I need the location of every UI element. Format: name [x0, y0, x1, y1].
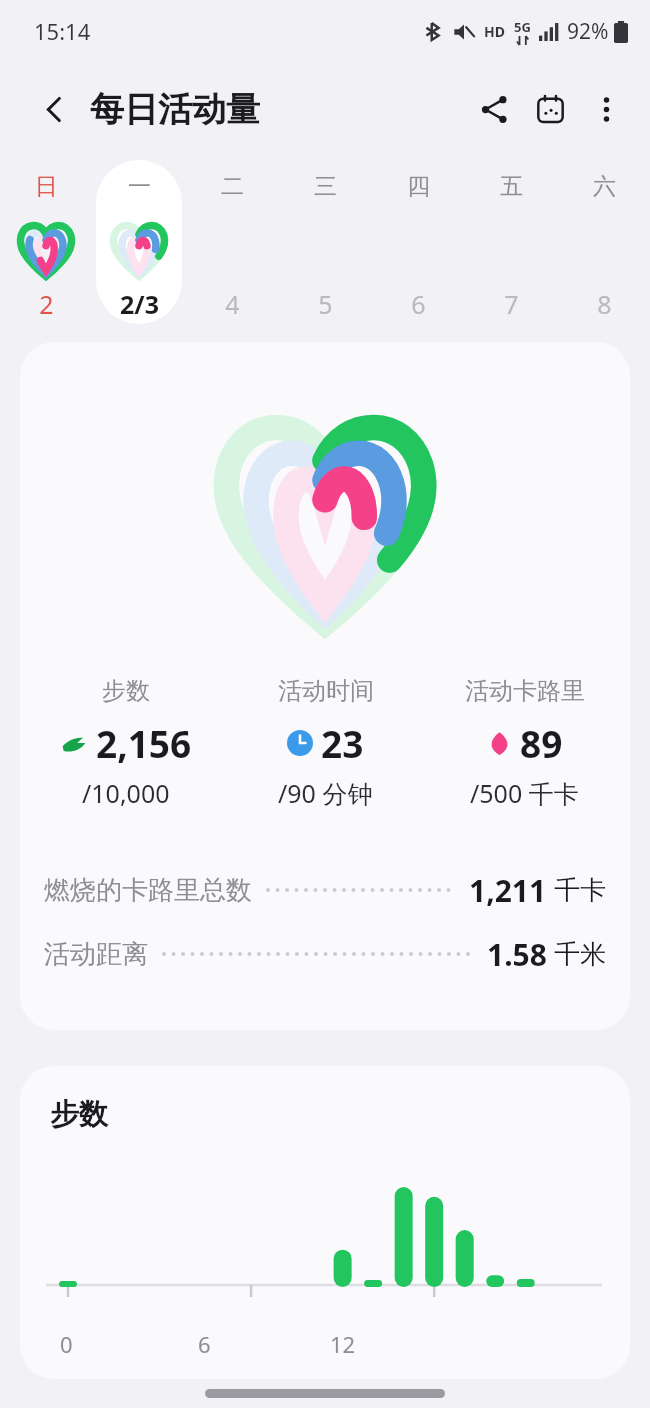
- staticText: 千米: [554, 938, 606, 971]
- staticText: 步数: [102, 676, 150, 706]
- button[interactable]: 三: [282, 160, 368, 324]
- button[interactable]: 一: [96, 160, 182, 324]
- staticText: 5G: [514, 18, 531, 36]
- staticText: 五: [500, 172, 523, 201]
- staticText: 6: [198, 1329, 211, 1359]
- staticText: /10,000: [82, 776, 170, 810]
- staticText: 活动时间: [278, 676, 374, 706]
- staticText: 活动距离: [44, 938, 148, 971]
- staticText: 千卡: [554, 874, 606, 907]
- button[interactable]: 步数: [26, 676, 226, 810]
- button[interactable]: Share: [466, 81, 522, 137]
- button[interactable]: 活动时间: [226, 676, 425, 810]
- staticText: 三: [314, 172, 337, 201]
- button[interactable]: 四: [375, 160, 461, 324]
- staticText: 燃烧的卡路里总数: [44, 874, 252, 907]
- button[interactable]: 活动卡路里: [425, 676, 624, 810]
- staticText: 活动卡路里: [465, 676, 585, 706]
- staticText: 2/3: [120, 287, 159, 321]
- staticText: 二: [221, 172, 244, 201]
- staticText: 1.58: [487, 934, 547, 975]
- button[interactable]: Calendar: [522, 81, 578, 137]
- staticText: 12: [330, 1329, 356, 1359]
- staticText: 23: [321, 718, 364, 768]
- staticText: 一: [128, 172, 151, 201]
- button[interactable]: 五: [468, 160, 554, 324]
- staticText: 1,211: [469, 870, 547, 911]
- button[interactable]: 日: [3, 160, 89, 324]
- staticText: 每日活动量: [90, 88, 260, 131]
- staticText: 5: [318, 287, 333, 321]
- staticText: 8: [597, 287, 612, 321]
- button[interactable]: 燃烧的卡路里总数: [44, 858, 606, 922]
- staticText: 15:14: [34, 16, 91, 46]
- button[interactable]: 活动距离: [44, 922, 606, 986]
- staticText: 7: [504, 287, 519, 321]
- button[interactable]: 步数: [20, 1066, 630, 1379]
- staticText: 四: [407, 172, 430, 201]
- staticText: 2,156: [96, 718, 192, 768]
- staticText: 92%: [567, 17, 609, 46]
- staticText: /90 分钟: [278, 776, 373, 810]
- staticText: 步数: [50, 1096, 108, 1133]
- staticText: 0: [60, 1329, 73, 1359]
- staticText: 4: [225, 287, 240, 321]
- staticText: 六: [593, 172, 616, 201]
- staticText: HD: [484, 22, 505, 41]
- staticText: /500 千卡: [470, 776, 579, 810]
- staticText: 日: [35, 172, 58, 201]
- button[interactable]: 二: [189, 160, 275, 324]
- button[interactable]: 六: [561, 160, 647, 324]
- staticText: 2: [39, 287, 54, 321]
- staticText: 6: [411, 287, 426, 321]
- staticText: 89: [520, 718, 563, 768]
- button[interactable]: More options: [578, 81, 634, 137]
- button[interactable]: Back: [26, 81, 82, 137]
